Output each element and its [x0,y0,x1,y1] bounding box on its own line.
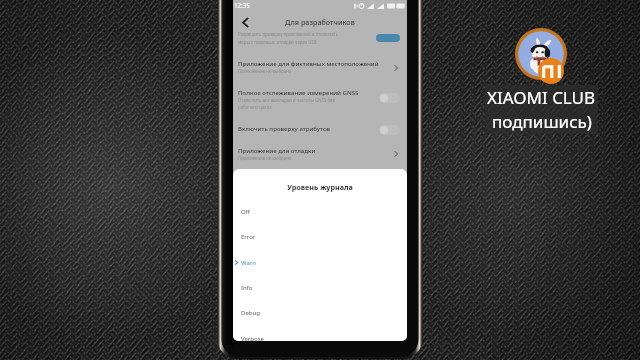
button[interactable]: Off [233,199,407,224]
staticText: XIAOMI CLUB [487,86,596,109]
staticText: Приложение не выбрано [238,155,292,161]
button[interactable]: Toggle Полное отслеживание измерений GNS… [379,93,400,103]
other: Приложение для фиктивных местоположений [392,64,400,72]
button[interactable]: Включить проверку атрибутов [233,123,407,135]
button[interactable]: Приложение для фиктивных местоположений [233,58,407,77]
button[interactable]: Error [233,224,407,249]
staticText: Off [241,208,250,216]
button[interactable]: Info [233,275,407,300]
staticText: подпишись) [492,110,592,133]
staticText: Error [241,233,256,241]
staticText: Для разработчиков [285,17,355,27]
button[interactable]: Полное отслеживание измерений GNSS [233,87,407,111]
staticText: Включить проверку атрибутов [238,124,331,132]
button[interactable]: Приложение для отладки [233,145,407,164]
button[interactable]: Back [236,13,254,31]
button[interactable]: Verbose [233,326,407,341]
staticText: 12:35 [234,1,250,9]
staticText: рабочего цикла [238,104,272,110]
staticText: Отключить все выкладки и частоты GNSS бе… [238,97,335,103]
other: Приложение для отладки [392,150,400,158]
staticText: Уровень журнала [287,182,353,192]
staticText: Info [241,284,253,292]
staticText: Приложение для фиктивных местоположений [238,59,379,67]
staticText: Warn [241,259,257,267]
staticText: меры с помощью отладки через USB [238,39,317,45]
staticText: Приложение для отладки [238,146,316,154]
staticText: Debug [241,309,260,317]
staticText: Приложение не выбрано [238,68,292,74]
button[interactable]: Toggle verify apps over USB [376,34,400,42]
staticText: Полное отслеживание измерений GNSS [238,88,359,96]
staticText: Verbose [241,335,264,341]
button[interactable]: Разрешить проверку приложений и отключат… [233,28,407,45]
button[interactable]: Warn [233,250,407,275]
staticText: Разрешить проверку приложений и отключат… [238,31,339,37]
button[interactable]: Toggle Включить проверку атрибутов [379,125,400,135]
button[interactable]: XIAOMI CLUB channel [484,12,600,136]
button[interactable]: Debug [233,300,407,325]
